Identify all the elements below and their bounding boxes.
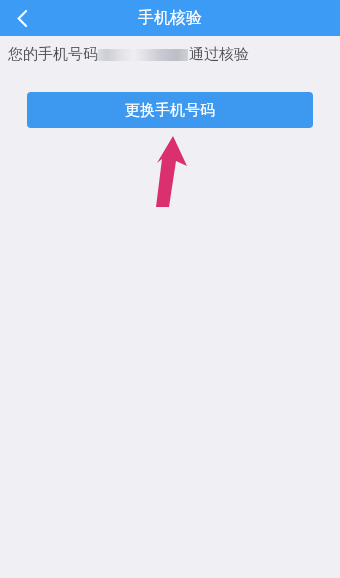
- staticText: 您的手机号码: [8, 45, 98, 64]
- button[interactable]: 更换手机号码: [27, 92, 313, 128]
- staticText: 通过核验: [189, 45, 249, 64]
- button[interactable]: Back: [0, 0, 44, 36]
- staticText: 手机核验: [138, 8, 202, 28]
- staticText: 更换手机号码: [125, 101, 215, 120]
